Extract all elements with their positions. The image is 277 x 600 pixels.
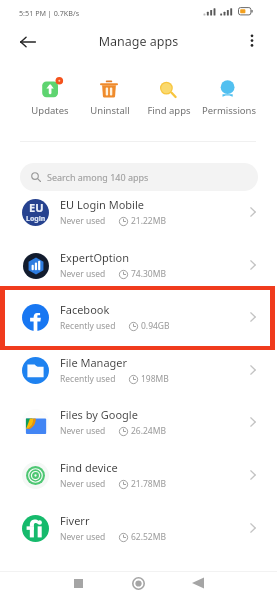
staticText: Never used	[60, 425, 106, 437]
staticText: ExpertOption	[60, 250, 130, 265]
button[interactable]: Facebook	[0, 291, 277, 344]
button[interactable]: Back	[184, 569, 212, 597]
staticText: Facebook	[60, 302, 110, 317]
staticText: Login	[26, 214, 46, 224]
staticText: Search among 140 apps	[47, 171, 149, 183]
button[interactable]: Find apps	[139, 74, 199, 122]
staticText: Find apps	[139, 104, 199, 117]
staticText: File Manager	[60, 355, 128, 370]
button[interactable]: ExpertOption	[0, 239, 277, 292]
staticText: Fiverr	[60, 513, 90, 528]
button[interactable]: Back	[12, 26, 44, 58]
button[interactable]: Home	[124, 569, 152, 597]
staticText: Recently used	[60, 320, 116, 332]
staticText: Uninstall	[80, 104, 140, 117]
button[interactable]: File Manager	[0, 344, 277, 397]
button[interactable]: Recents	[64, 569, 92, 597]
button[interactable]: More options	[236, 26, 268, 58]
staticText: Recently used	[60, 373, 116, 385]
staticText: Find device	[60, 460, 118, 475]
staticText: Never used	[60, 215, 106, 227]
button[interactable]: EU	[0, 186, 277, 239]
staticText: 74.30MB	[131, 268, 166, 280]
staticText: Never used	[60, 531, 106, 543]
staticText: 26.24MB	[131, 425, 166, 437]
button[interactable]: Permissions	[199, 74, 259, 122]
staticText: Files by Google	[60, 407, 138, 422]
staticText: EU	[29, 200, 44, 215]
button[interactable]: Fiverr	[0, 502, 277, 555]
button[interactable]: Find device	[0, 449, 277, 502]
staticText: 21.22MB	[131, 215, 166, 227]
staticText: EU Login Mobile	[60, 197, 144, 212]
staticText: 62.52MB	[131, 531, 166, 543]
staticText: 5:51 PM | 0.7KB/s	[19, 8, 80, 18]
button[interactable]: Updates	[20, 74, 80, 122]
button[interactable]: Files by Google	[0, 396, 277, 449]
staticText: 21.78MB	[131, 478, 166, 490]
staticText: Never used	[60, 478, 106, 490]
staticText: 0.94GB	[141, 320, 170, 332]
staticText: 198MB	[141, 373, 169, 385]
staticText: Permissions	[199, 104, 259, 117]
button[interactable]: Search among 140 apps	[20, 163, 258, 191]
staticText: Manage apps	[0, 33, 277, 50]
button[interactable]: Uninstall	[80, 74, 140, 122]
staticText: Updates	[20, 104, 80, 117]
staticText: Never used	[60, 268, 106, 280]
